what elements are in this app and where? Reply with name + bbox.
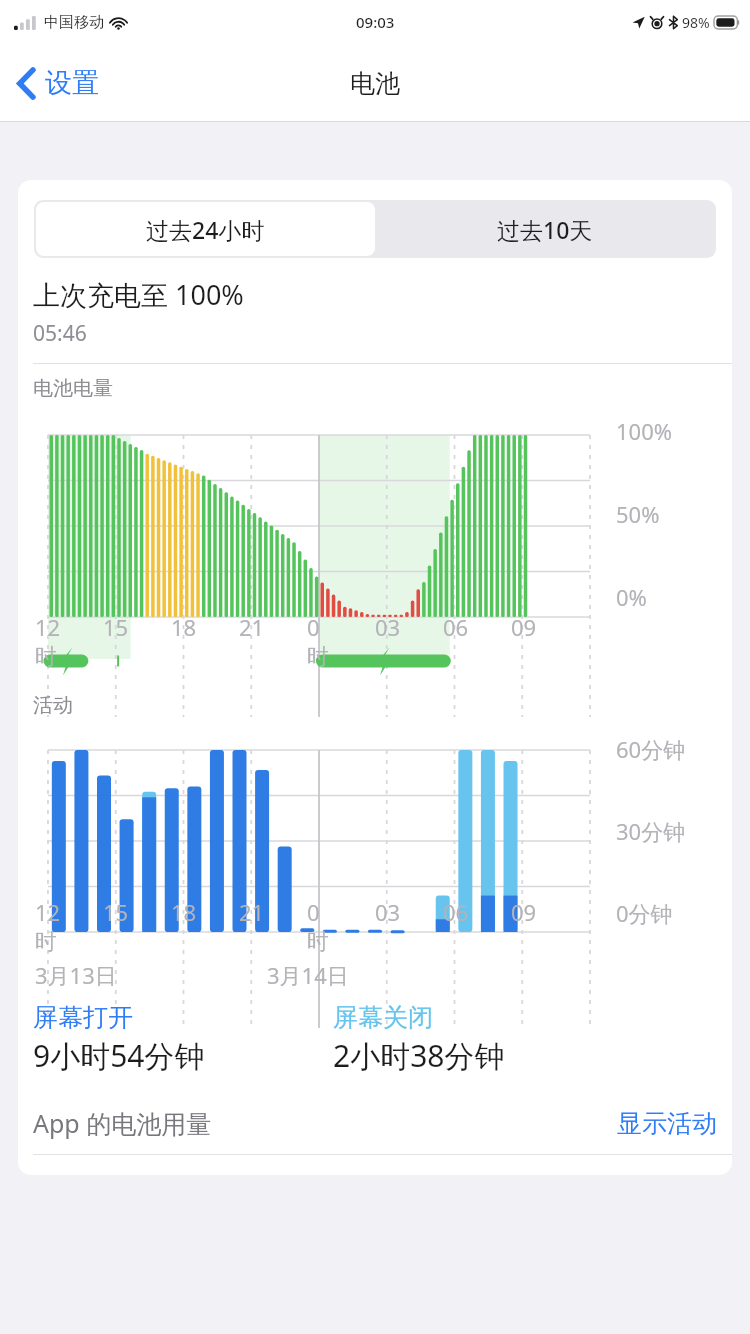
- staticText: 09: [511, 612, 537, 642]
- staticText: 电池电量: [33, 376, 113, 401]
- staticText: 0分钟: [616, 898, 673, 928]
- staticText: 9小时54分钟: [33, 1035, 205, 1076]
- button[interactable]: 过去24小时: [36, 202, 375, 256]
- staticText: 12时: [35, 897, 69, 956]
- staticText: 显示活动: [617, 1108, 717, 1139]
- staticText: 过去24小时: [146, 214, 265, 245]
- button[interactable]: 设置: [12, 60, 105, 106]
- button[interactable]: 过去10天: [375, 202, 714, 256]
- staticText: 0时: [307, 612, 341, 671]
- staticText: 100%: [616, 416, 673, 446]
- staticText: 15: [103, 897, 129, 927]
- staticText: 过去10天: [497, 214, 593, 245]
- staticText: 05:46: [33, 319, 87, 348]
- staticText: 15: [103, 612, 129, 642]
- staticText: 03: [375, 897, 401, 927]
- staticText: 09:03: [356, 12, 395, 32]
- staticText: 21: [239, 612, 265, 642]
- staticText: 21: [239, 897, 265, 927]
- staticText: 09: [511, 897, 537, 927]
- staticText: 30分钟: [616, 816, 686, 846]
- staticText: 06: [443, 897, 469, 927]
- staticText: 活动: [33, 693, 73, 718]
- staticText: 0%: [616, 582, 647, 612]
- staticText: 设置: [45, 66, 99, 100]
- staticText: 12时: [35, 612, 69, 671]
- staticText: 3月14日: [267, 960, 349, 990]
- button[interactable]: 显示活动: [617, 1108, 717, 1139]
- staticText: 中国移动: [44, 13, 104, 32]
- staticText: 50%: [616, 499, 660, 529]
- staticText: 03: [375, 612, 401, 642]
- staticText: 电池: [350, 68, 400, 99]
- staticText: 18: [171, 897, 197, 927]
- staticText: 3月13日: [35, 960, 117, 990]
- staticText: App 的电池用量: [33, 1106, 212, 1140]
- staticText: 屏幕打开: [33, 1002, 133, 1033]
- staticText: 18: [171, 612, 197, 642]
- staticText: 98%: [682, 13, 710, 32]
- staticText: 60分钟: [616, 734, 686, 764]
- staticText: 屏幕关闭: [333, 1002, 433, 1033]
- staticText: 0时: [307, 897, 341, 956]
- staticText: 上次充电至 100%: [33, 276, 244, 313]
- staticText: 2小时38分钟: [333, 1035, 505, 1076]
- staticText: 06: [443, 612, 469, 642]
